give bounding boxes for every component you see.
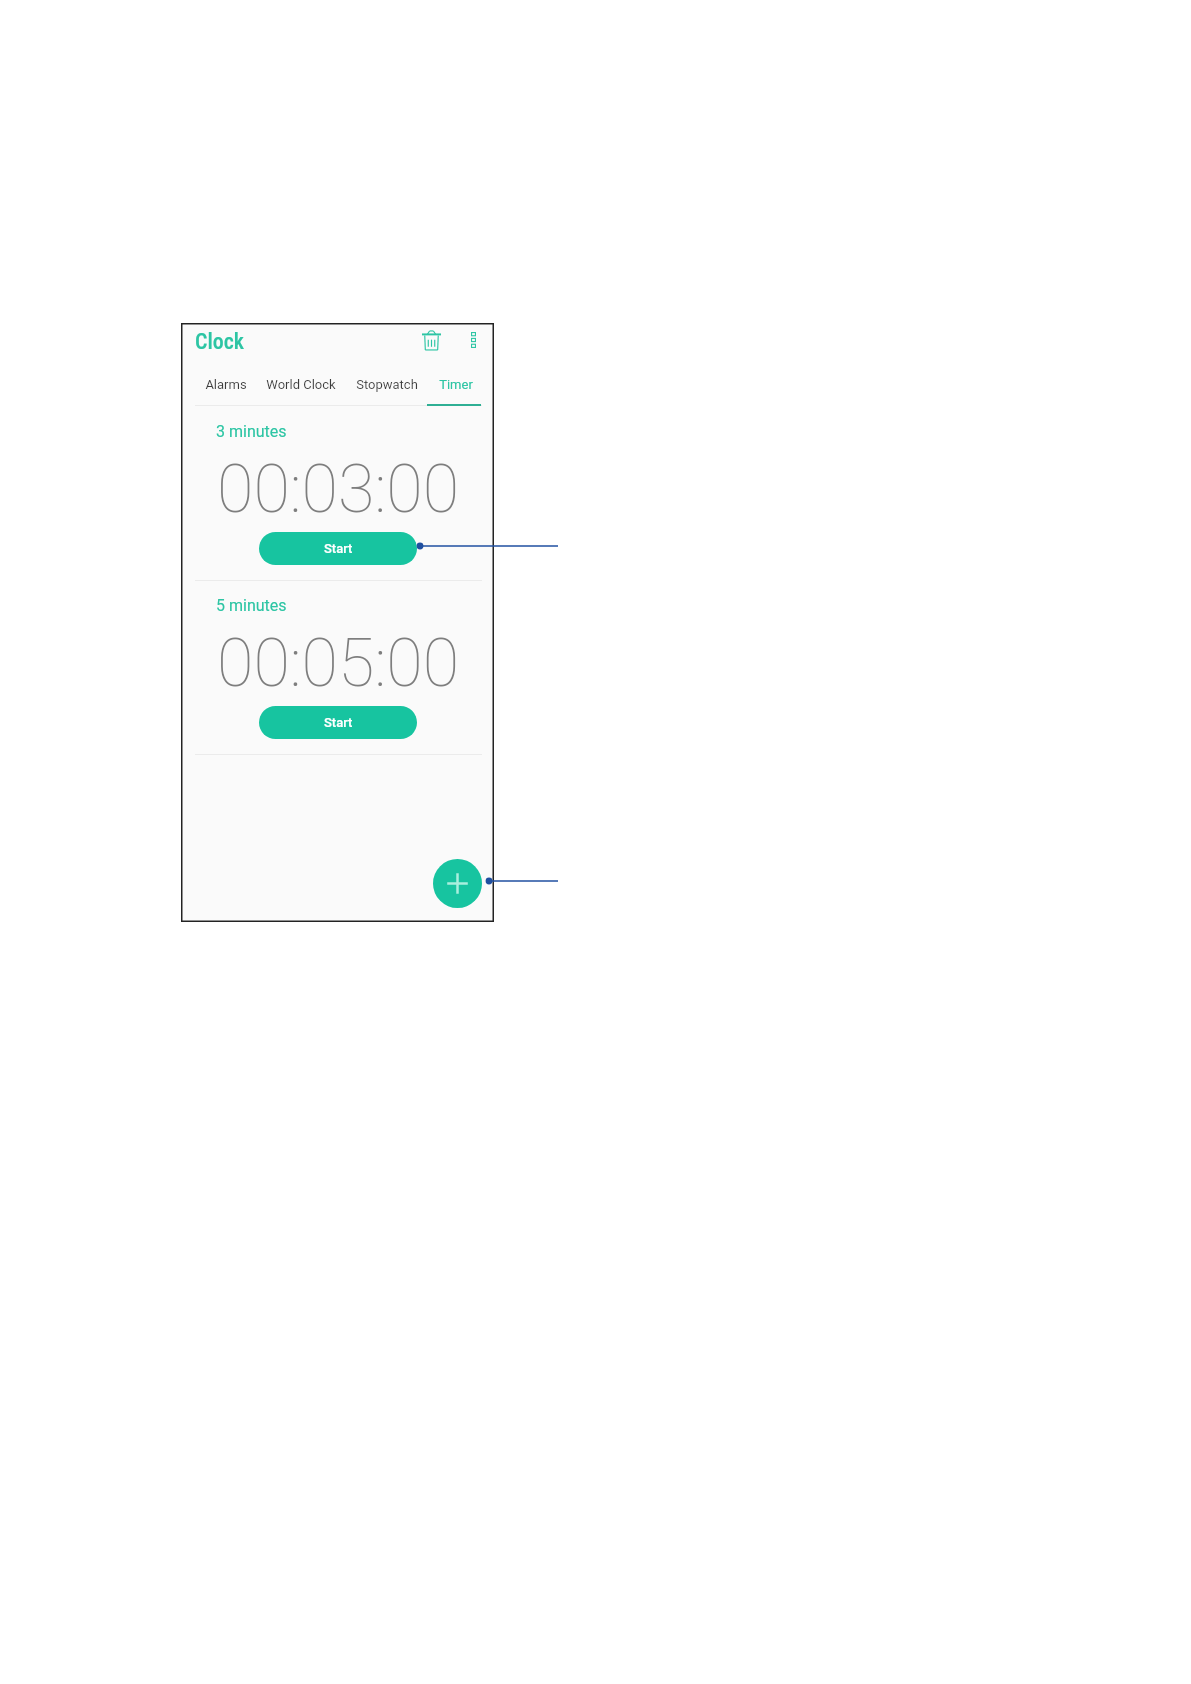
staticText: Start xyxy=(324,541,353,556)
button[interactable]: Alarms xyxy=(188,369,264,399)
staticText: Clock xyxy=(195,329,244,355)
staticText: Start xyxy=(324,715,353,730)
staticText: World Clock xyxy=(266,377,336,392)
staticText: Stopwatch xyxy=(356,377,418,392)
staticText: Alarms xyxy=(205,377,247,392)
button[interactable]: Add timer xyxy=(433,859,482,908)
staticText: 3 minutes xyxy=(216,422,287,441)
staticText: 00:03:00 xyxy=(217,450,460,528)
button[interactable]: Start xyxy=(259,706,417,739)
button[interactable]: World Clock xyxy=(263,369,339,399)
button[interactable]: Stopwatch xyxy=(349,369,425,399)
button[interactable]: Delete timers xyxy=(415,324,447,356)
staticText: 5 minutes xyxy=(216,596,287,615)
button[interactable]: Timer xyxy=(418,369,494,399)
button[interactable]: More options xyxy=(458,325,488,355)
staticText: Timer xyxy=(439,377,473,392)
button[interactable]: Start xyxy=(259,532,417,565)
staticText: 00:05:00 xyxy=(217,624,460,702)
